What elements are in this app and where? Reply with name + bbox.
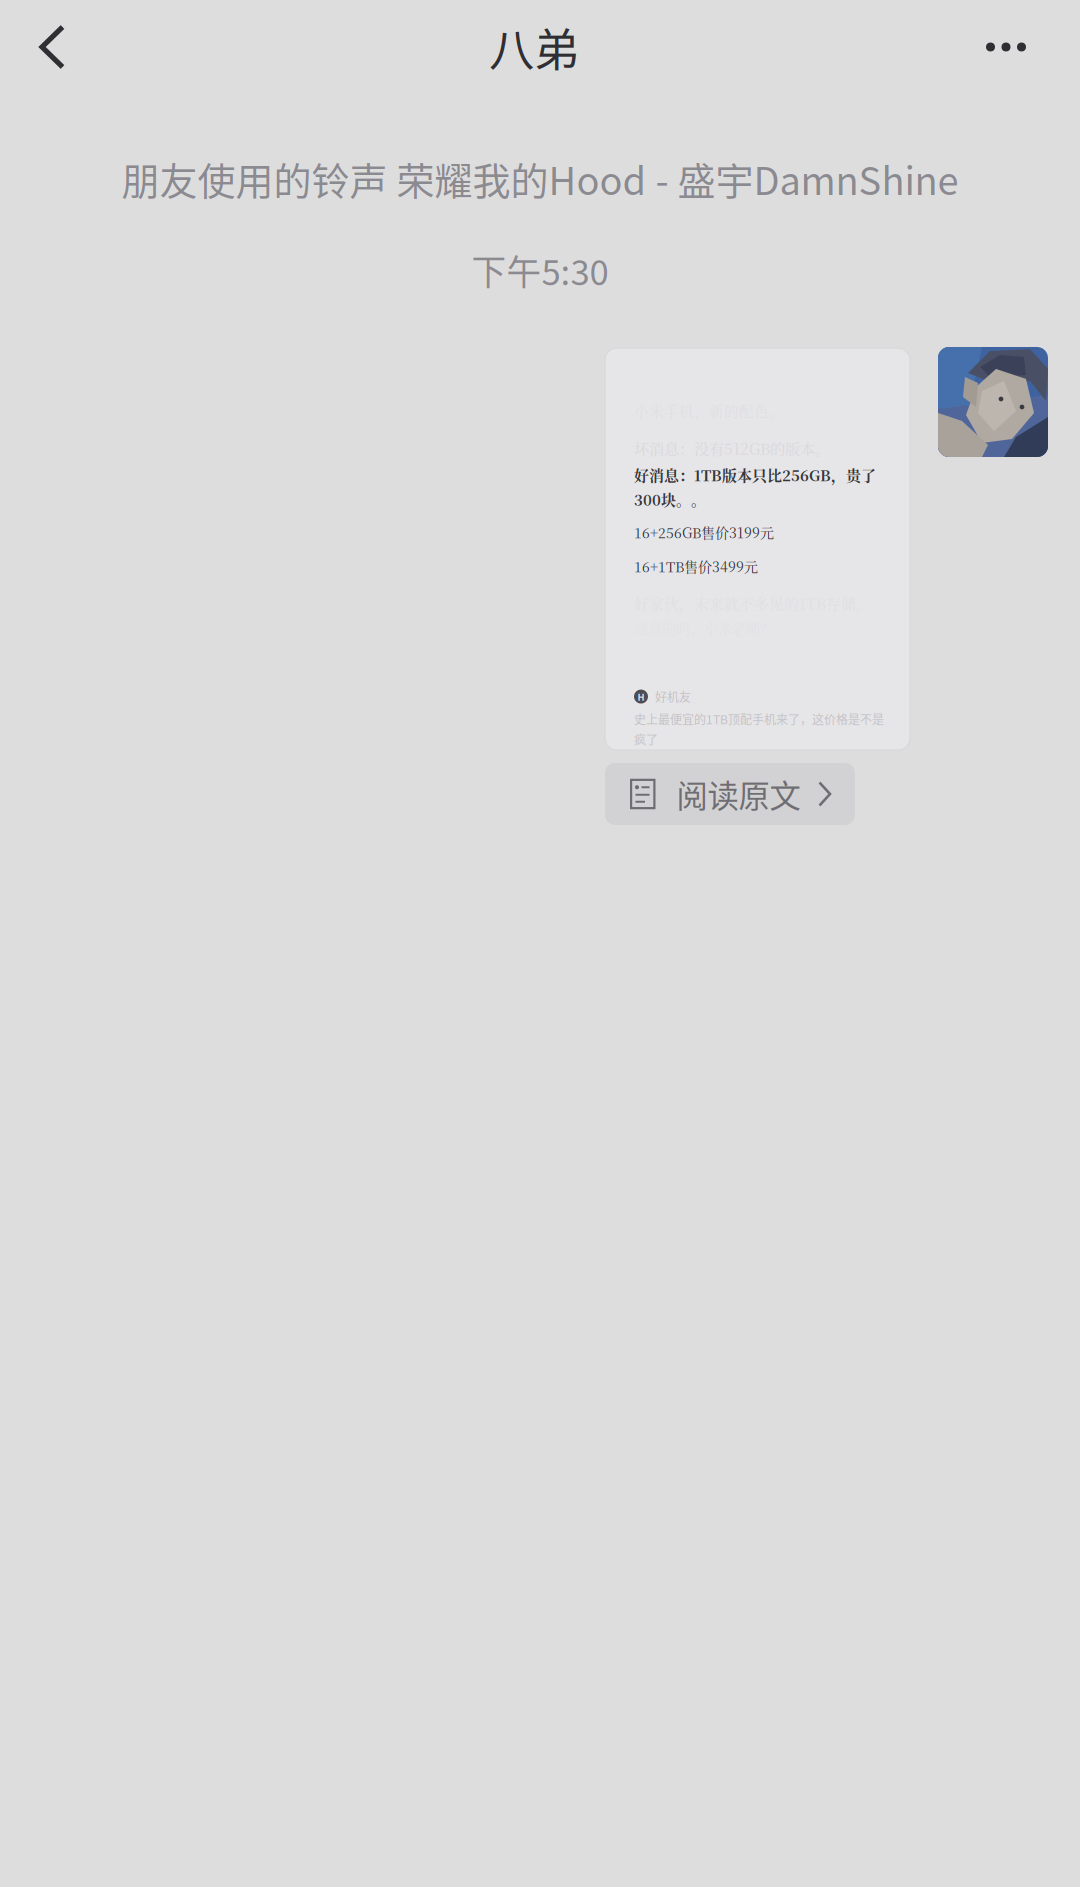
button[interactable]: 阅读原文	[605, 763, 855, 825]
button[interactable]: More	[950, 0, 1080, 94]
staticText: 好机友	[655, 688, 691, 705]
staticText: 阅读原文	[676, 771, 800, 817]
button[interactable]: 好机友 avatar	[938, 347, 1048, 457]
staticText: 下午5:30	[471, 245, 608, 295]
staticText: 史上最便宜的1TB顶配手机来了，这价格是不是疯了	[634, 710, 884, 748]
staticText: 朋友使用的铃声 荣耀我的Hood - 盛宇DamnShine	[121, 151, 958, 206]
staticText: 好消息：1TB版本只比256GB，贵了300块。。	[634, 464, 876, 510]
staticText: H	[637, 690, 644, 703]
button[interactable]: Back	[0, 0, 130, 94]
staticText: 16+256GB售价3199元	[634, 522, 774, 542]
staticText: 16+1TB售价3499元	[634, 556, 758, 576]
staticText: 八弟	[489, 14, 579, 80]
button[interactable]: 小米手机，新的配色。	[605, 348, 910, 750]
staticText: 坏消息：没有512GB的版本。	[634, 437, 830, 459]
